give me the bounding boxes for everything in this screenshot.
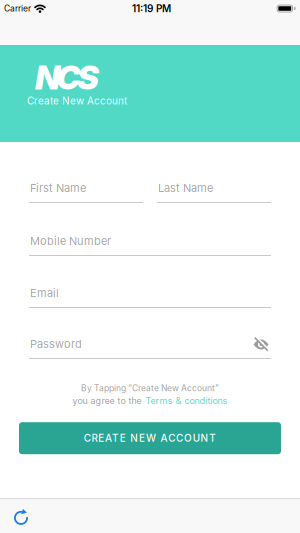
staticText: 11:19 PM [132,3,171,14]
button[interactable]: Refresh [0,507,30,524]
staticText: you agree to the [72,395,141,406]
staticText: Password [30,337,82,350]
staticText: CREATE NEW ACCOUNT [84,432,216,444]
staticText: Mobile Number [30,234,111,247]
button[interactable]: Last Name [157,180,271,203]
staticText: Last Name [158,181,213,194]
staticText: Carrier [4,3,31,14]
button[interactable]: CREATE NEW ACCOUNT [19,422,281,454]
button[interactable]: Mobile Number [29,233,271,256]
button[interactable]: Password [29,336,271,359]
button[interactable]: First Name [29,180,143,203]
button[interactable]: Terms & conditions [145,395,227,406]
staticText: Terms & conditions [145,395,227,406]
staticText: First Name [30,181,86,194]
button[interactable]: Show password [252,336,271,351]
staticText: By Tapping “Create New Account” [81,383,219,393]
staticText: NCS [35,58,99,97]
button[interactable]: Email [29,285,271,308]
staticText: Email [30,286,59,299]
staticText: Create New Account [27,95,127,107]
